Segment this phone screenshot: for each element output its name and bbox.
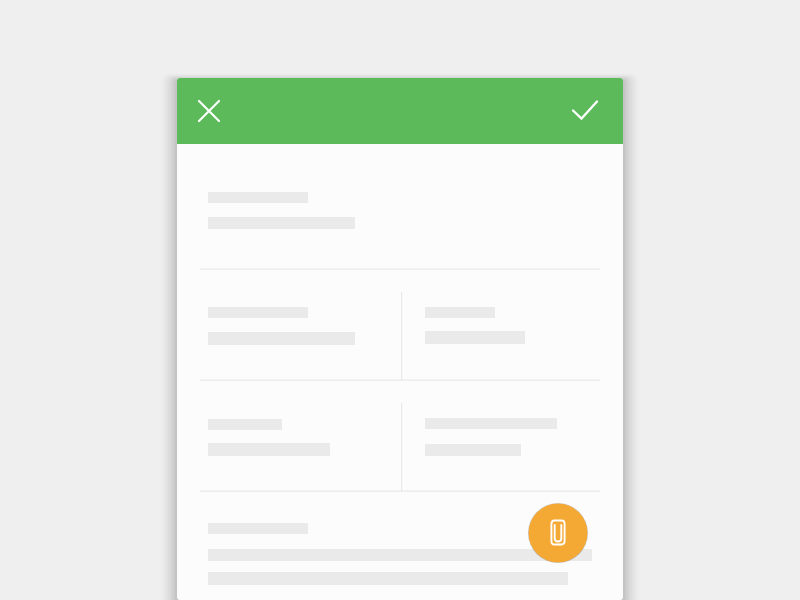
button[interactable]: Close [185, 87, 233, 135]
button[interactable]: Attach file [528, 503, 588, 563]
button[interactable]: Confirm [561, 86, 609, 134]
